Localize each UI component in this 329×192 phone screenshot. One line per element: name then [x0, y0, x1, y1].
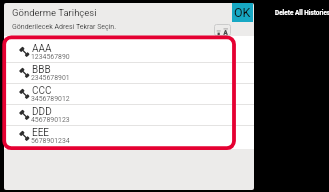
button[interactable]: AAA: [4, 42, 254, 63]
staticText: EEE: [32, 127, 50, 139]
staticText: OK: [234, 5, 251, 20]
button[interactable]: DDD: [4, 105, 254, 126]
staticText: CCC: [32, 85, 52, 97]
staticText: 1234567890: [31, 53, 70, 61]
staticText: 4567890123: [31, 116, 70, 124]
staticText: DDD: [32, 106, 52, 118]
staticText: AAA: [32, 43, 52, 55]
button[interactable]: EEE: [4, 126, 254, 147]
staticText: Delete All Histories: [275, 9, 329, 17]
staticText: Gönderme Tarihçesi: [12, 7, 97, 18]
staticText: Gönderilecek Adresi Tekrar Seçin.: [12, 23, 117, 31]
button[interactable]: Text size: [214, 24, 231, 36]
button[interactable]: CCC: [4, 84, 254, 105]
button[interactable]: BBB: [4, 63, 254, 84]
button[interactable]: OK: [232, 3, 253, 22]
staticText: 3456789012: [31, 95, 70, 103]
staticText: 5678901234: [31, 137, 70, 145]
staticText: 2345678901: [31, 74, 70, 82]
staticText: BBB: [32, 64, 51, 76]
